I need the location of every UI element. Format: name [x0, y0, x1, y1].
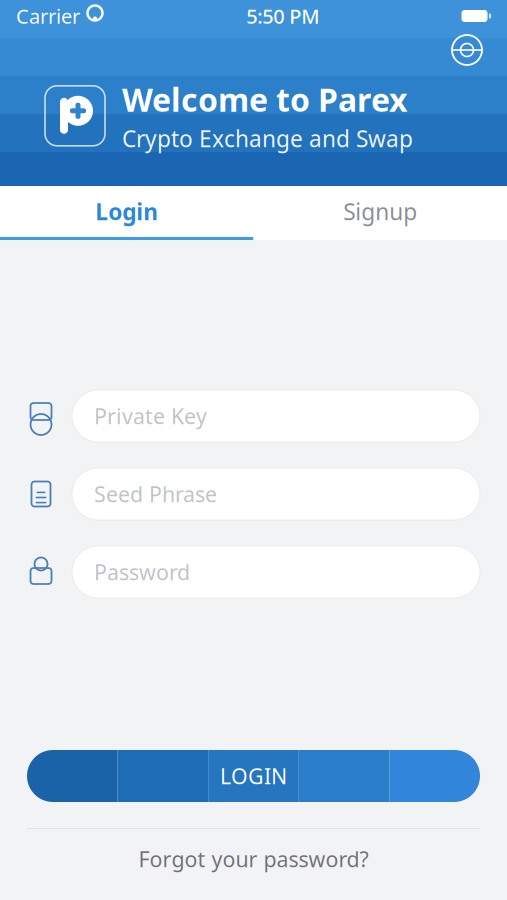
button[interactable]: Seed Phrase: [0, 468, 507, 520]
staticText: Private Key: [94, 402, 207, 430]
button[interactable]: Password: [0, 546, 507, 598]
staticText: Carrier: [16, 3, 80, 29]
button[interactable]: Language: [445, 28, 489, 72]
staticText: Signup: [343, 196, 417, 226]
button[interactable]: Signup: [253, 186, 507, 237]
staticText: Login: [95, 196, 158, 226]
staticText: Seed Phrase: [94, 480, 217, 508]
button[interactable]: LOGIN: [0, 750, 507, 802]
button[interactable]: Login: [0, 186, 253, 237]
staticText: Welcome to Parex: [122, 78, 407, 120]
button[interactable]: Private Key: [0, 390, 507, 442]
staticText: Crypto Exchange and Swap: [122, 123, 413, 154]
button[interactable]: Forgot your password?: [0, 846, 507, 872]
staticText: 5:50 PM: [246, 3, 319, 29]
staticText: Forgot your password?: [138, 845, 368, 873]
staticText: Password: [94, 558, 190, 586]
staticText: LOGIN: [220, 762, 287, 790]
